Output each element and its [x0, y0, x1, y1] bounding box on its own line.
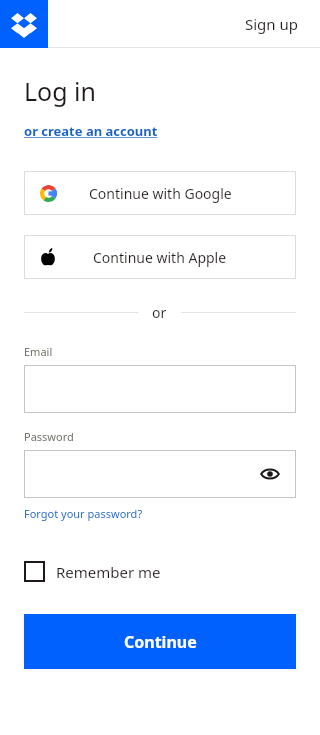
- staticText: Continue with Google: [89, 184, 232, 203]
- button[interactable]: Show password: [24, 450, 296, 498]
- button[interactable]: Forgot your password?: [24, 506, 143, 521]
- staticText: Remember me: [56, 562, 161, 582]
- staticText: Log in: [24, 74, 97, 108]
- button[interactable]: Continue with Apple: [24, 235, 296, 279]
- staticText: or create an account: [24, 122, 158, 140]
- button[interactable]: Continue: [24, 614, 296, 669]
- button[interactable]: Show password: [258, 462, 282, 486]
- button[interactable]: Remember me: [24, 561, 161, 582]
- staticText: Continue: [124, 631, 197, 653]
- staticText: Password: [24, 429, 74, 444]
- button[interactable]: Continue with Google: [24, 171, 296, 215]
- staticText: Forgot your password?: [24, 506, 143, 521]
- button[interactable]: or create an account: [24, 122, 158, 140]
- button[interactable]: Sign up: [245, 14, 298, 34]
- button[interactable]: Dropbox home: [0, 0, 48, 48]
- staticText: Continue with Apple: [93, 248, 227, 267]
- staticText: or: [152, 303, 167, 322]
- staticText: Email: [24, 344, 53, 359]
- staticText: Sign up: [245, 14, 298, 34]
- button[interactable]: [24, 365, 296, 413]
